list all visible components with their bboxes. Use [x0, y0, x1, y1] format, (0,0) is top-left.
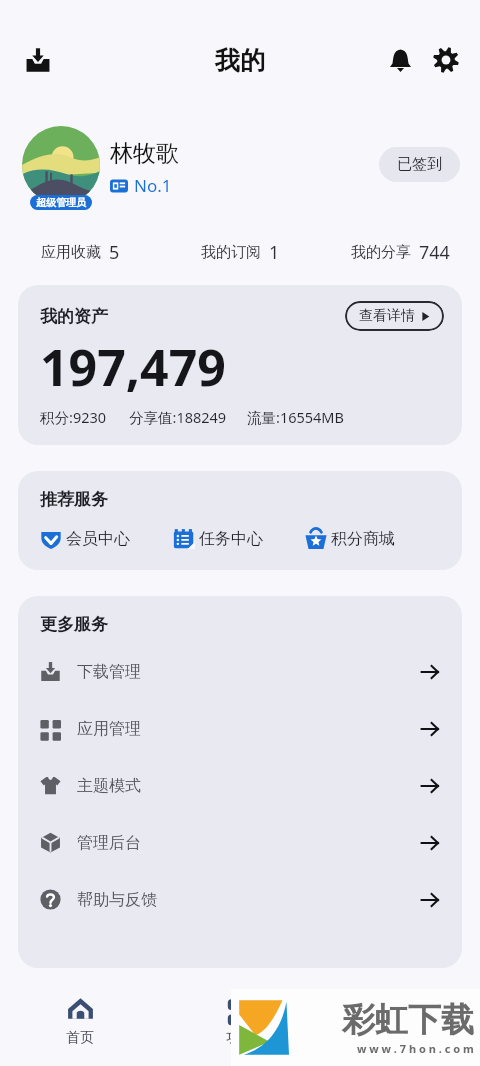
staticText: 已签到: [397, 155, 442, 174]
staticText: 超级管理员: [36, 196, 86, 209]
button[interactable]: 主题模式: [18, 757, 462, 814]
staticText: 744: [419, 240, 450, 265]
button[interactable]: 查看详情: [345, 301, 444, 331]
staticText: 我的分享: [351, 243, 411, 262]
staticText: 应用管理: [77, 719, 141, 739]
button[interactable]: 首页: [0, 975, 160, 1066]
staticText: 积分商城: [331, 529, 395, 549]
button[interactable]: Settings: [424, 38, 468, 82]
button[interactable]: Profile avatar: [22, 126, 100, 218]
staticText: 首页: [66, 1029, 94, 1047]
button[interactable]: 管理后台: [18, 814, 462, 871]
button[interactable]: Downloads: [16, 38, 60, 82]
button[interactable]: 应用管理: [18, 700, 462, 757]
button[interactable]: 积分商城: [305, 528, 444, 550]
button[interactable]: 任务中心: [173, 528, 305, 550]
button[interactable]: 我的分享: [320, 240, 480, 265]
button[interactable]: 下载管理: [18, 643, 462, 700]
button[interactable]: 会员中心: [40, 528, 173, 550]
staticText: 查看详情: [359, 307, 415, 325]
staticText: 推荐服务: [40, 489, 108, 510]
staticText: 应用收藏: [41, 243, 101, 262]
staticText: 任务中心: [199, 529, 263, 549]
staticText: 1: [269, 240, 280, 265]
staticText: 我的: [215, 45, 265, 76]
staticText: 功能: [226, 1029, 254, 1047]
staticText: 彩虹下载: [342, 999, 474, 1041]
staticText: 林牧歌: [110, 139, 179, 168]
staticText: 流量:16554MB: [247, 407, 344, 427]
button[interactable]: 功能: [160, 975, 320, 1066]
staticText: 我的: [386, 1029, 414, 1047]
button[interactable]: 我的资产: [18, 285, 462, 445]
staticText: w w w . 7 h o n . c o m: [357, 1041, 474, 1056]
button[interactable]: 我的订阅: [160, 240, 320, 265]
staticText: 分享值:188249: [129, 407, 227, 427]
staticText: 管理后台: [77, 833, 141, 853]
staticText: 帮助与反馈: [77, 890, 157, 910]
staticText: 积分:9230: [40, 407, 107, 427]
staticText: 我的订阅: [201, 243, 261, 262]
button[interactable]: 应用收藏: [0, 240, 160, 265]
staticText: No.1: [134, 174, 172, 197]
staticText: 下载管理: [77, 662, 141, 682]
staticText: 主题模式: [77, 776, 141, 796]
staticText: 会员中心: [66, 529, 130, 549]
button[interactable]: Notifications: [378, 38, 422, 82]
staticText: 197,479: [40, 333, 226, 401]
button[interactable]: 帮助与反馈: [18, 871, 462, 928]
button[interactable]: 我的: [320, 975, 480, 1066]
staticText: 我的资产: [40, 306, 108, 327]
button[interactable]: 已签到: [379, 147, 460, 182]
staticText: 更多服务: [40, 614, 108, 635]
staticText: 5: [109, 240, 120, 265]
